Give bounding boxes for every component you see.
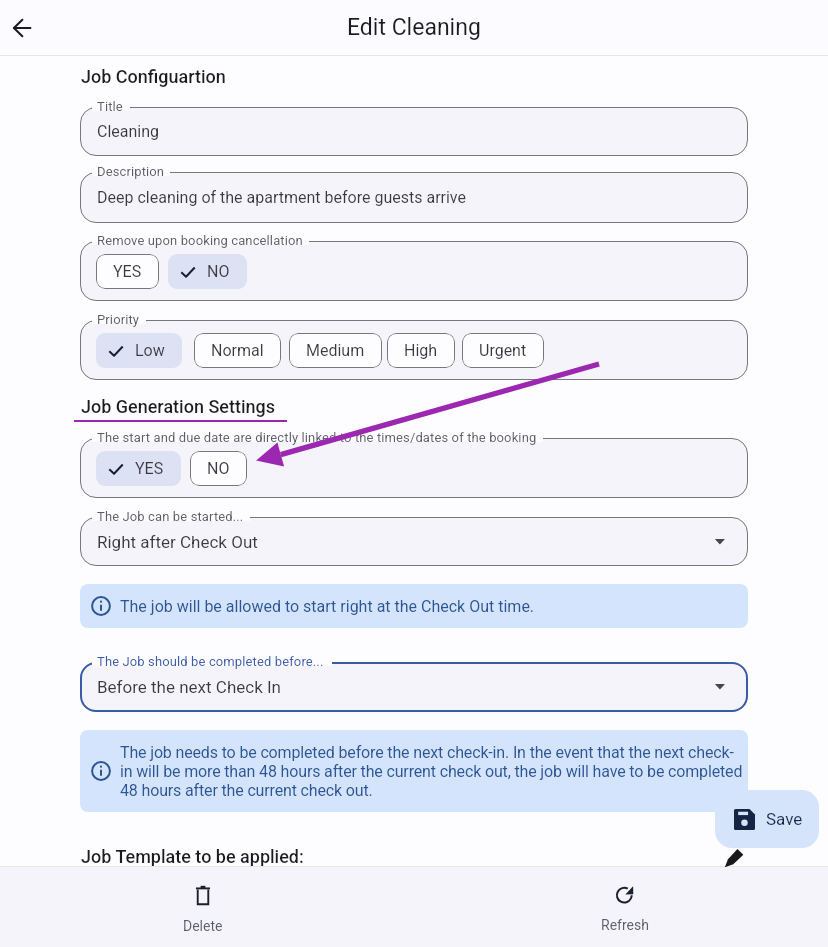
staticText: Priority	[97, 312, 140, 327]
staticText: Low	[135, 341, 165, 360]
staticText: The start and due date are directly link…	[97, 430, 537, 445]
staticText: The job will be allowed to start right a…	[120, 597, 535, 616]
button[interactable]: YES	[96, 451, 181, 486]
staticText: Delete	[183, 918, 223, 934]
staticText: Title	[97, 99, 123, 114]
button[interactable]: Back	[0, 4, 46, 52]
staticText: Job Generation Settings	[81, 396, 276, 417]
staticText: Remove upon booking cancellation	[97, 233, 303, 248]
staticText: Medium	[306, 341, 365, 360]
staticText: NO	[207, 262, 230, 281]
staticText: Edit Cleaning	[347, 14, 481, 41]
staticText: NO	[207, 459, 230, 478]
staticText: High	[404, 341, 438, 360]
button[interactable]: Low	[96, 333, 182, 368]
staticText: Cleaning	[97, 122, 160, 141]
staticText: 48 hours after the current check out.	[120, 781, 373, 800]
staticText: Save	[766, 809, 803, 829]
button[interactable]: NO	[190, 451, 247, 486]
staticText: The Job can be started...	[97, 509, 244, 524]
staticText: in will be more than 48 hours after the …	[120, 762, 743, 781]
staticText: Normal	[211, 341, 264, 360]
button[interactable]: High	[387, 333, 455, 368]
staticText: Job Configuartion	[81, 66, 226, 87]
staticText: Deep cleaning of the apartment before gu…	[97, 188, 466, 207]
staticText: Urgent	[479, 341, 527, 360]
staticText: Right after Check Out	[97, 532, 258, 552]
button[interactable]: Normal	[194, 333, 281, 368]
button[interactable]: Delete	[0, 867, 410, 947]
button[interactable]: Medium	[289, 333, 382, 368]
button[interactable]: Save	[715, 790, 819, 848]
staticText: Refresh	[601, 917, 649, 933]
button[interactable]: Urgent	[462, 333, 544, 368]
staticText: Job Template to be applied:	[81, 846, 304, 867]
button[interactable]: NO	[168, 254, 247, 289]
button[interactable]: Refresh	[418, 867, 828, 947]
staticText: YES	[113, 262, 142, 281]
button[interactable]: YES	[96, 254, 159, 289]
staticText: Description	[97, 164, 165, 179]
staticText: The job needs to be completed before the…	[120, 743, 734, 762]
staticText: Before the next Check In	[97, 677, 282, 697]
staticText: The Job should be completed before...	[97, 654, 324, 669]
staticText: YES	[135, 459, 164, 478]
